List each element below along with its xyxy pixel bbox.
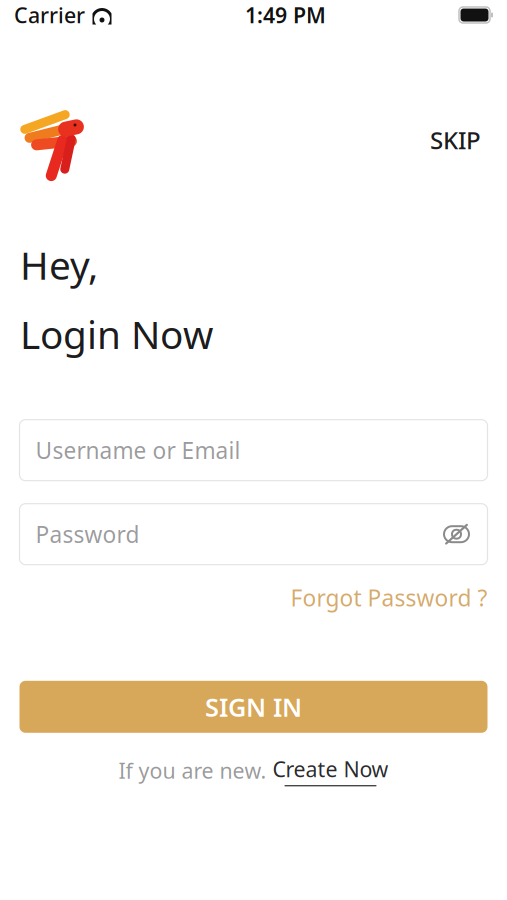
staticText: Login Now <box>20 308 213 360</box>
staticText: 1:49 PM <box>245 1 326 29</box>
button[interactable]: Create Now <box>272 755 388 786</box>
staticText: SKIP <box>430 124 481 156</box>
button[interactable]: SKIP <box>424 118 487 162</box>
button[interactable]: Username or Email <box>19 420 487 481</box>
staticText: If you are new. <box>118 756 266 785</box>
button[interactable]: SIGN IN <box>19 681 487 733</box>
button[interactable]: Show password <box>437 515 475 553</box>
staticText: Username or Email <box>35 435 240 465</box>
staticText: Create Now <box>272 755 388 783</box>
staticText: Hey, <box>20 239 98 290</box>
staticText: Password <box>35 519 139 549</box>
button[interactable]: Forgot Password ? <box>290 579 487 617</box>
staticText: Forgot Password ? <box>290 583 487 613</box>
staticText: SIGN IN <box>205 690 302 724</box>
staticText: Carrier <box>14 1 85 29</box>
